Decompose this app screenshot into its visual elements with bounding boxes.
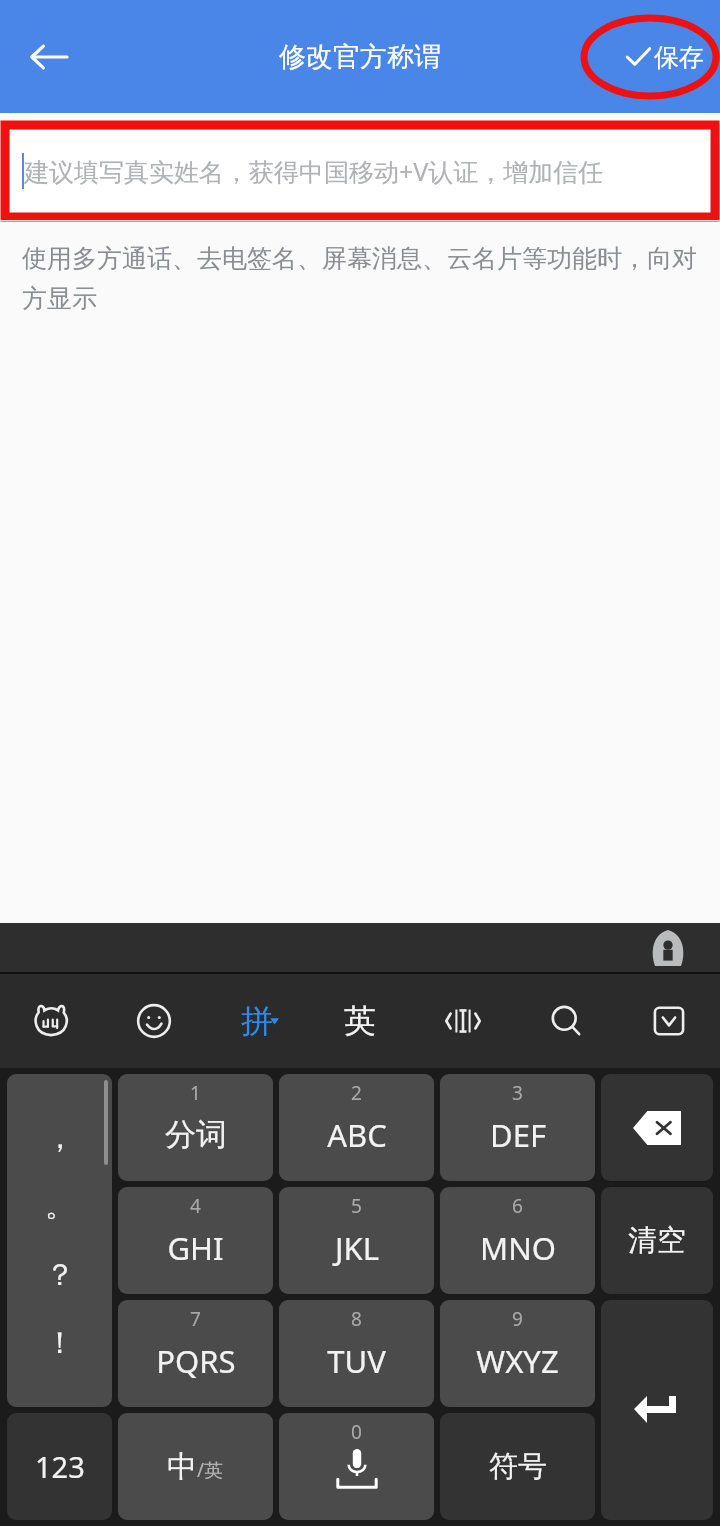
button[interactable]: 4	[118, 1187, 273, 1294]
staticText: 123	[35, 1447, 85, 1486]
button[interactable]: 中	[118, 1413, 273, 1520]
staticText: 1	[190, 1080, 201, 1106]
button[interactable]: 保存	[625, 22, 704, 92]
staticText: 6	[512, 1193, 523, 1219]
staticText: 分词	[165, 1115, 227, 1154]
staticText: 清空	[628, 1222, 686, 1259]
staticText: 拼	[241, 1001, 273, 1041]
staticText: TUV	[327, 1340, 386, 1382]
staticText: 2	[351, 1080, 362, 1106]
button[interactable]: 7	[118, 1300, 273, 1407]
button[interactable]: 5	[279, 1187, 434, 1294]
staticText: WXYZ	[476, 1340, 559, 1382]
button[interactable]: Space and voice input	[279, 1413, 434, 1520]
staticText: PQRS	[156, 1340, 236, 1382]
button[interactable]: ，	[7, 1074, 112, 1407]
button[interactable]: 8	[279, 1300, 434, 1407]
staticText: 建议填写真实姓名，获得中国移动+V认证，增加信任	[24, 154, 604, 188]
button[interactable]: 1	[118, 1074, 273, 1181]
staticText: GHI	[167, 1227, 224, 1269]
button[interactable]: 9	[440, 1300, 595, 1407]
staticText: JKL	[335, 1227, 379, 1269]
staticText: 3	[512, 1080, 523, 1106]
button[interactable]: Pinyin mode	[205, 974, 308, 1068]
button[interactable]: Move cursor	[411, 974, 514, 1068]
staticText: 5	[351, 1193, 362, 1219]
staticText: 保存	[654, 42, 704, 73]
button[interactable]: 123	[7, 1413, 112, 1520]
button[interactable]: Search	[514, 974, 617, 1068]
button[interactable]: Backspace	[601, 1074, 713, 1181]
staticText: 8	[351, 1306, 362, 1332]
staticText: 修改官方称谓	[279, 40, 441, 74]
staticText: 0	[351, 1419, 362, 1445]
button[interactable]: 清空	[601, 1187, 713, 1294]
button[interactable]: Baidu input	[0, 974, 102, 1068]
staticText: /英	[197, 1457, 224, 1483]
staticText: 使用多方通话、去电签名、屏幕消息、云名片等功能时，向对方显示	[22, 243, 698, 314]
staticText: 9	[512, 1306, 523, 1332]
staticText: ？	[45, 1256, 75, 1294]
button[interactable]: 3	[440, 1074, 595, 1181]
button[interactable]: 符号	[440, 1413, 595, 1520]
button[interactable]: Hide keyboard	[617, 974, 720, 1068]
button[interactable]: 2	[279, 1074, 434, 1181]
button[interactable]: Enter	[601, 1300, 713, 1520]
button[interactable]: Emoji	[102, 974, 205, 1068]
staticText: 英	[344, 1001, 376, 1041]
button[interactable]: Back	[14, 22, 84, 92]
button[interactable]: 6	[440, 1187, 595, 1294]
staticText: ，	[45, 1119, 75, 1157]
staticText: ABC	[327, 1114, 387, 1156]
staticText: 4	[190, 1193, 201, 1219]
staticText: 7	[190, 1306, 201, 1332]
staticText: 符号	[489, 1448, 547, 1485]
staticText: 中	[167, 1448, 197, 1486]
staticText: 。	[45, 1187, 75, 1225]
staticText: MNO	[480, 1227, 556, 1269]
staticText: ！	[45, 1324, 75, 1362]
button[interactable]: 建议填写真实姓名，获得中国移动+V认证，增加信任	[0, 122, 720, 220]
button[interactable]: English mode	[308, 974, 411, 1068]
button[interactable]: Input method logo	[646, 926, 690, 970]
staticText: DEF	[490, 1114, 546, 1156]
